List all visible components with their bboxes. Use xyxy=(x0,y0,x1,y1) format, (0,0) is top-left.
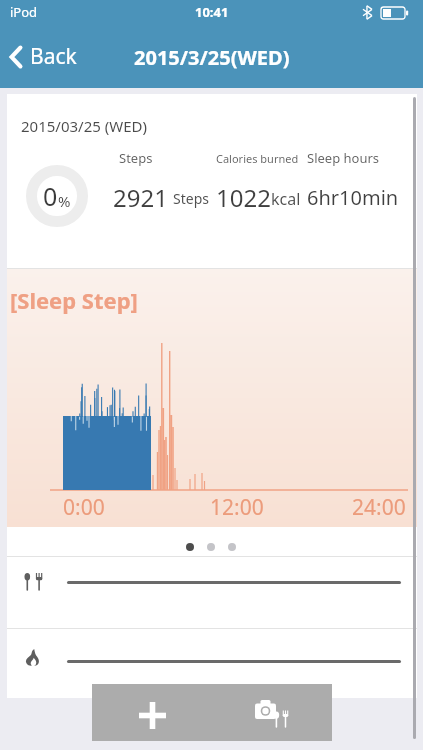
staticText: 10:41 xyxy=(195,3,229,21)
button[interactable] xyxy=(7,557,417,628)
button[interactable] xyxy=(7,629,417,698)
staticText: 24:00 xyxy=(352,493,406,522)
staticText: 0:00 xyxy=(63,493,105,522)
button[interactable] xyxy=(124,690,180,740)
staticText: % xyxy=(58,191,71,211)
staticText: Sleep hours xyxy=(307,149,380,167)
staticText: Steps xyxy=(173,189,209,208)
staticText: Steps xyxy=(119,149,153,167)
staticText: kcal xyxy=(271,188,301,210)
staticText: Back xyxy=(30,42,77,71)
staticText: iPod xyxy=(10,3,38,21)
staticText: Calories burned xyxy=(216,151,299,166)
staticText: 6hr10min xyxy=(307,184,399,211)
staticText: 2015/03/25 (WED) xyxy=(21,116,147,136)
staticText: 1022 xyxy=(216,181,271,214)
button[interactable] xyxy=(242,689,302,739)
staticText: 12:00 xyxy=(210,493,264,522)
button[interactable]: Back xyxy=(8,42,77,71)
staticText: 0 xyxy=(43,179,58,213)
staticText: 2921 xyxy=(113,181,168,214)
staticText: 2015/3/25(WED) xyxy=(134,44,290,71)
staticText: [Sleep Step] xyxy=(10,285,138,315)
